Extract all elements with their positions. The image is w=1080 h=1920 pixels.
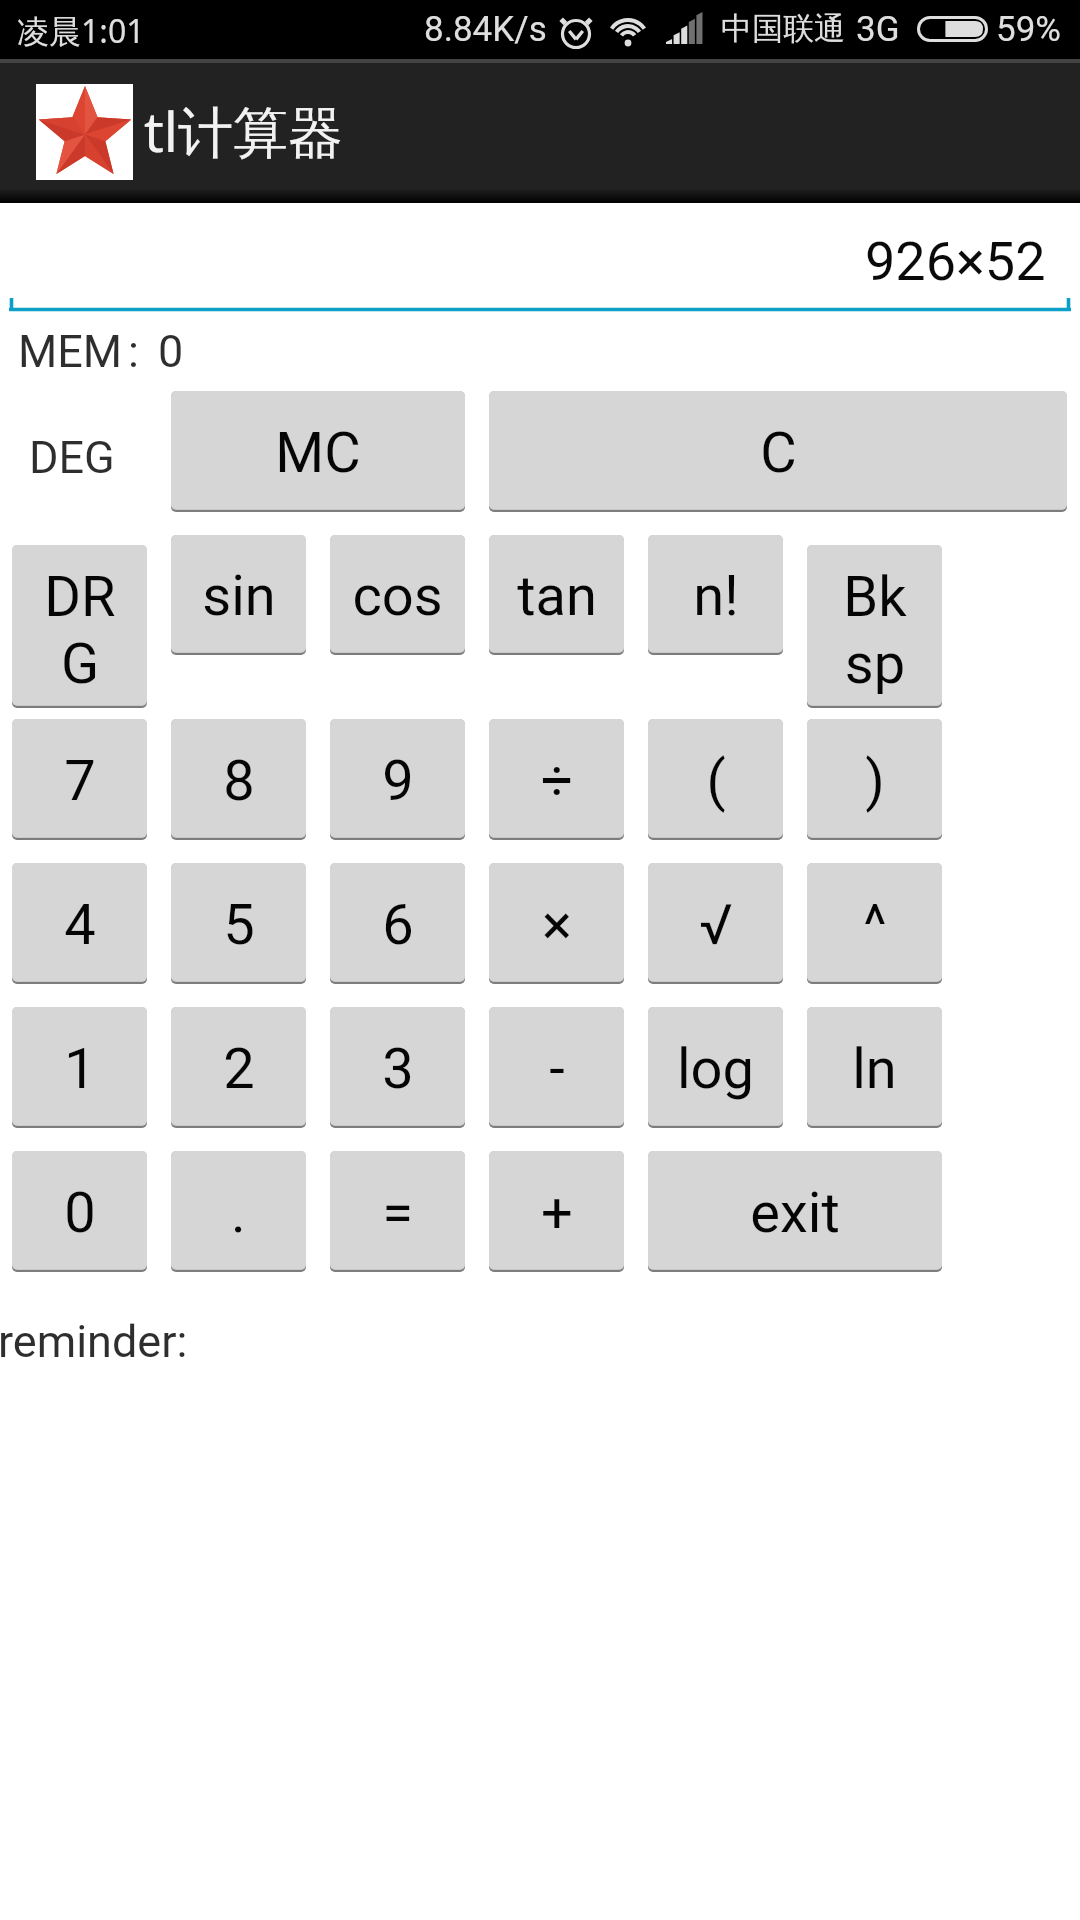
button[interactable]: Bk sp [807,545,942,706]
button[interactable]: ) [807,719,942,838]
staticText: 3 [382,1036,414,1102]
staticText: MEM [18,325,123,378]
staticText: ^ [863,892,887,958]
button[interactable]: 9 [330,719,465,838]
button[interactable]: 8 [171,719,306,838]
staticText: 7 [64,748,96,814]
button[interactable]: 7 [12,719,147,838]
staticText: . [231,1180,246,1246]
staticText: tl计算器 [144,93,344,168]
button[interactable]: = [330,1151,465,1270]
button[interactable]: 1 [12,1007,147,1126]
staticText: ln [852,1036,897,1102]
button[interactable]: ( [648,719,783,838]
staticText: 6 [382,892,414,958]
staticText: 8 [223,748,255,814]
staticText: 926×52 [865,230,1046,293]
staticText: 9 [382,748,414,814]
button[interactable]: tan [489,535,624,653]
staticText: Bk sp [843,564,907,697]
button[interactable]: 3 [330,1007,465,1126]
staticText: log [677,1036,754,1102]
other: Alarm [559,10,593,50]
other: Signal [666,12,704,44]
staticText: tan [517,563,597,629]
staticText: exit [750,1180,840,1246]
staticText: √ [699,892,733,958]
button[interactable]: exit [648,1151,942,1270]
button[interactable]: n! [648,535,783,653]
staticText: MC [275,420,361,486]
button[interactable]: sin [171,535,306,653]
staticText: 2 [223,1036,255,1102]
other: Wi-Fi [608,12,648,46]
staticText: n! [693,563,739,629]
staticText: + [541,1180,573,1246]
button[interactable]: 6 [330,863,465,982]
staticText: 5 [223,892,255,958]
button[interactable]: × [489,863,624,982]
button[interactable]: 4 [12,863,147,982]
button[interactable]: . [171,1151,306,1270]
button[interactable]: √ [648,863,783,982]
other: Battery [917,16,988,42]
button[interactable]: 5 [171,863,306,982]
staticText: sin [202,563,276,629]
staticText: 1 [64,1036,96,1102]
staticText: ) [865,748,885,814]
button[interactable]: ln [807,1007,942,1126]
button[interactable]: 2 [171,1007,306,1126]
staticText: 59% [996,9,1061,50]
staticText: 中国联通 [721,9,845,48]
button[interactable]: cos [330,535,465,653]
button[interactable]: DR G [12,545,147,706]
button[interactable]: log [648,1007,783,1126]
button[interactable]: + [489,1151,624,1270]
staticText: reminder: [0,1315,188,1368]
staticText: - [549,1036,565,1102]
staticText: C [760,420,797,486]
button[interactable]: ÷ [489,719,624,838]
staticText: : [128,325,139,378]
staticText: DR G [44,564,116,697]
button[interactable]: C [489,391,1067,510]
staticText: = [382,1180,413,1246]
staticText: 凌晨1:01 [17,9,145,53]
staticText: 4 [64,892,96,958]
button[interactable]: MC [171,391,465,510]
staticText: cos [352,563,443,629]
button[interactable]: 0 [12,1151,147,1270]
staticText: 8.84K/s [424,9,547,50]
staticText: 0 [158,325,184,378]
staticText: DEG [29,431,115,484]
staticText: ( [706,748,726,814]
staticText: × [542,892,572,958]
button[interactable]: ^ [807,863,942,982]
button[interactable]: - [489,1007,624,1126]
staticText: 0 [64,1180,96,1246]
staticText: ÷ [541,748,573,814]
staticText: 3G [856,9,900,50]
